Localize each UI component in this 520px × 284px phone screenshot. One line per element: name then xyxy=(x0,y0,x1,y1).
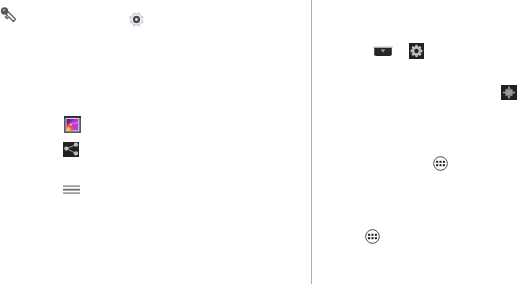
button[interactable]: Settings xyxy=(409,43,424,59)
button[interactable]: Settings xyxy=(128,11,145,28)
button[interactable]: Key xyxy=(0,6,17,23)
button[interactable]: Dropdown xyxy=(373,46,393,56)
button[interactable]: Settings xyxy=(501,85,517,100)
button[interactable]: Photo xyxy=(64,116,81,133)
button[interactable]: Share xyxy=(63,142,79,157)
button[interactable]: Menu xyxy=(63,185,80,194)
button[interactable]: Apps xyxy=(365,229,380,244)
button[interactable]: Apps xyxy=(433,156,448,171)
